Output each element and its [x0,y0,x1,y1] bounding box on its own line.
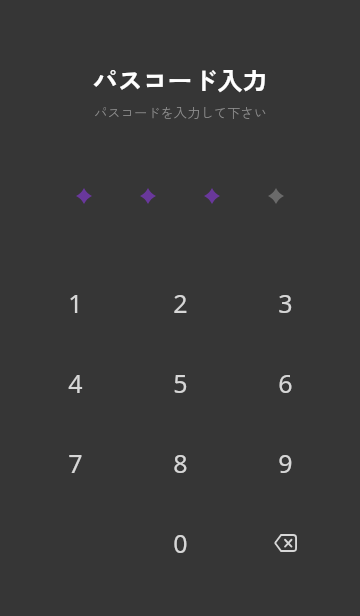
staticText: パスコード入力 [92,61,268,97]
staticText: 4 [68,366,83,400]
button[interactable]: 8 [128,423,233,503]
staticText: パスコードを入力して下さい [94,103,267,122]
button[interactable]: 4 [23,343,128,423]
button[interactable]: 9 [233,423,338,503]
staticText: 6 [278,366,293,400]
button[interactable]: 6 [233,343,338,423]
button[interactable]: 0 [128,503,233,583]
staticText: 2 [173,286,188,320]
button[interactable]: 1 [23,263,128,343]
button[interactable]: 5 [128,343,233,423]
staticText: 5 [173,366,188,400]
button[interactable]: Backspace [233,503,338,583]
staticText: 1 [68,286,83,320]
button[interactable]: 3 [233,263,338,343]
button[interactable]: 2 [128,263,233,343]
button[interactable]: 7 [23,423,128,503]
staticText: 8 [173,446,188,480]
staticText: 7 [68,446,83,480]
staticText: 0 [173,526,188,560]
staticText: 3 [278,286,293,320]
staticText: 9 [278,446,293,480]
